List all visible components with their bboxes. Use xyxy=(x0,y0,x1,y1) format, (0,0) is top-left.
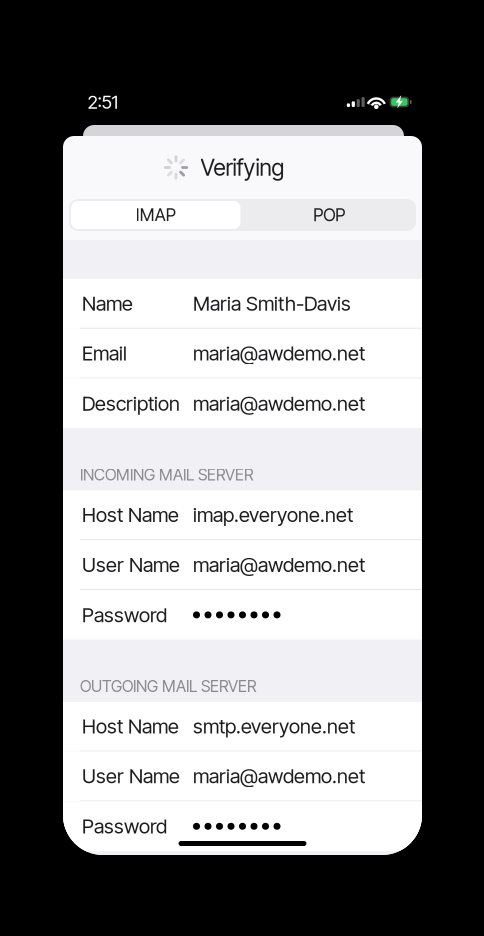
staticText: Name xyxy=(82,291,133,315)
staticText: INCOMING MAIL SERVER xyxy=(80,465,253,484)
staticText: Description xyxy=(82,391,180,416)
button[interactable]: Password xyxy=(63,590,422,640)
button[interactable]: IMAP xyxy=(69,199,242,231)
staticText: User Name xyxy=(82,764,180,788)
staticText: Email xyxy=(82,341,127,365)
button[interactable]: POP xyxy=(242,199,416,231)
staticText: User Name xyxy=(82,552,180,577)
staticText: 2:51 xyxy=(87,91,118,113)
staticText: Host Name xyxy=(82,714,179,738)
staticText: Verifying xyxy=(200,154,284,181)
button[interactable]: Password xyxy=(63,801,422,851)
button[interactable]: Name xyxy=(63,279,422,329)
staticText: imap.everyone.net xyxy=(193,503,353,527)
staticText: OUTGOING MAIL SERVER xyxy=(80,676,256,696)
staticText: Password xyxy=(82,814,167,838)
staticText: maria@awdemo.net xyxy=(193,552,365,577)
staticText: smtp.everyone.net xyxy=(193,714,355,738)
staticText: IMAP xyxy=(136,204,176,225)
staticText: Host Name xyxy=(82,503,179,527)
staticText: maria@awdemo.net xyxy=(193,341,365,365)
button[interactable]: Host Name xyxy=(63,702,422,752)
staticText: maria@awdemo.net xyxy=(193,391,365,416)
button[interactable]: User Name xyxy=(63,540,422,590)
staticText: maria@awdemo.net xyxy=(193,764,365,788)
staticText: POP xyxy=(313,204,345,225)
button[interactable]: Description xyxy=(63,379,422,428)
staticText: Password xyxy=(82,603,167,627)
button[interactable]: Email xyxy=(63,329,422,379)
button[interactable]: Host Name xyxy=(63,490,422,540)
staticText: Maria Smith-Davis xyxy=(193,291,351,315)
button[interactable]: User Name xyxy=(63,752,422,801)
